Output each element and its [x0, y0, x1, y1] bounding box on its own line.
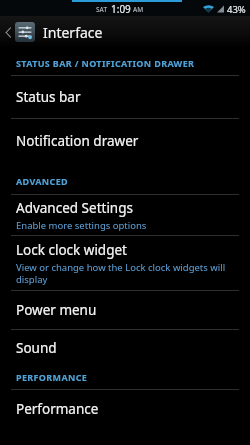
- staticText: Lock clock widget: [16, 241, 127, 259]
- button[interactable]: Performance: [0, 390, 250, 428]
- staticText: Performance: [16, 400, 99, 418]
- staticText: 1:09: [111, 2, 131, 16]
- button[interactable]: Power menu: [0, 291, 250, 329]
- staticText: Sound: [16, 339, 57, 357]
- staticText: ADVANCED: [16, 175, 68, 187]
- staticText: Power menu: [16, 301, 97, 319]
- staticText: SAT: [96, 5, 108, 14]
- button[interactable]: Status bar: [0, 76, 250, 118]
- button[interactable]: Lock clock widget: [0, 236, 250, 290]
- staticText: Notification drawer: [16, 132, 139, 150]
- staticText: Interface: [43, 23, 103, 42]
- button[interactable]: Navigate up from Interface: [0, 16, 250, 48]
- staticText: Enable more settings options: [16, 219, 147, 232]
- button[interactable]: Sound: [0, 330, 250, 366]
- staticText: 43%: [227, 3, 246, 16]
- staticText: AM: [133, 5, 144, 14]
- staticText: PERFORMANCE: [16, 371, 88, 383]
- staticText: View or change how the Lock clock widget…: [16, 261, 234, 286]
- button[interactable]: Advanced Settings: [0, 195, 250, 235]
- staticText: Advanced Settings: [16, 199, 133, 217]
- staticText: Status bar: [16, 88, 81, 106]
- staticText: STATUS BAR / NOTIFICATION DRAWER: [16, 57, 195, 69]
- button[interactable]: Notification drawer: [0, 119, 250, 162]
